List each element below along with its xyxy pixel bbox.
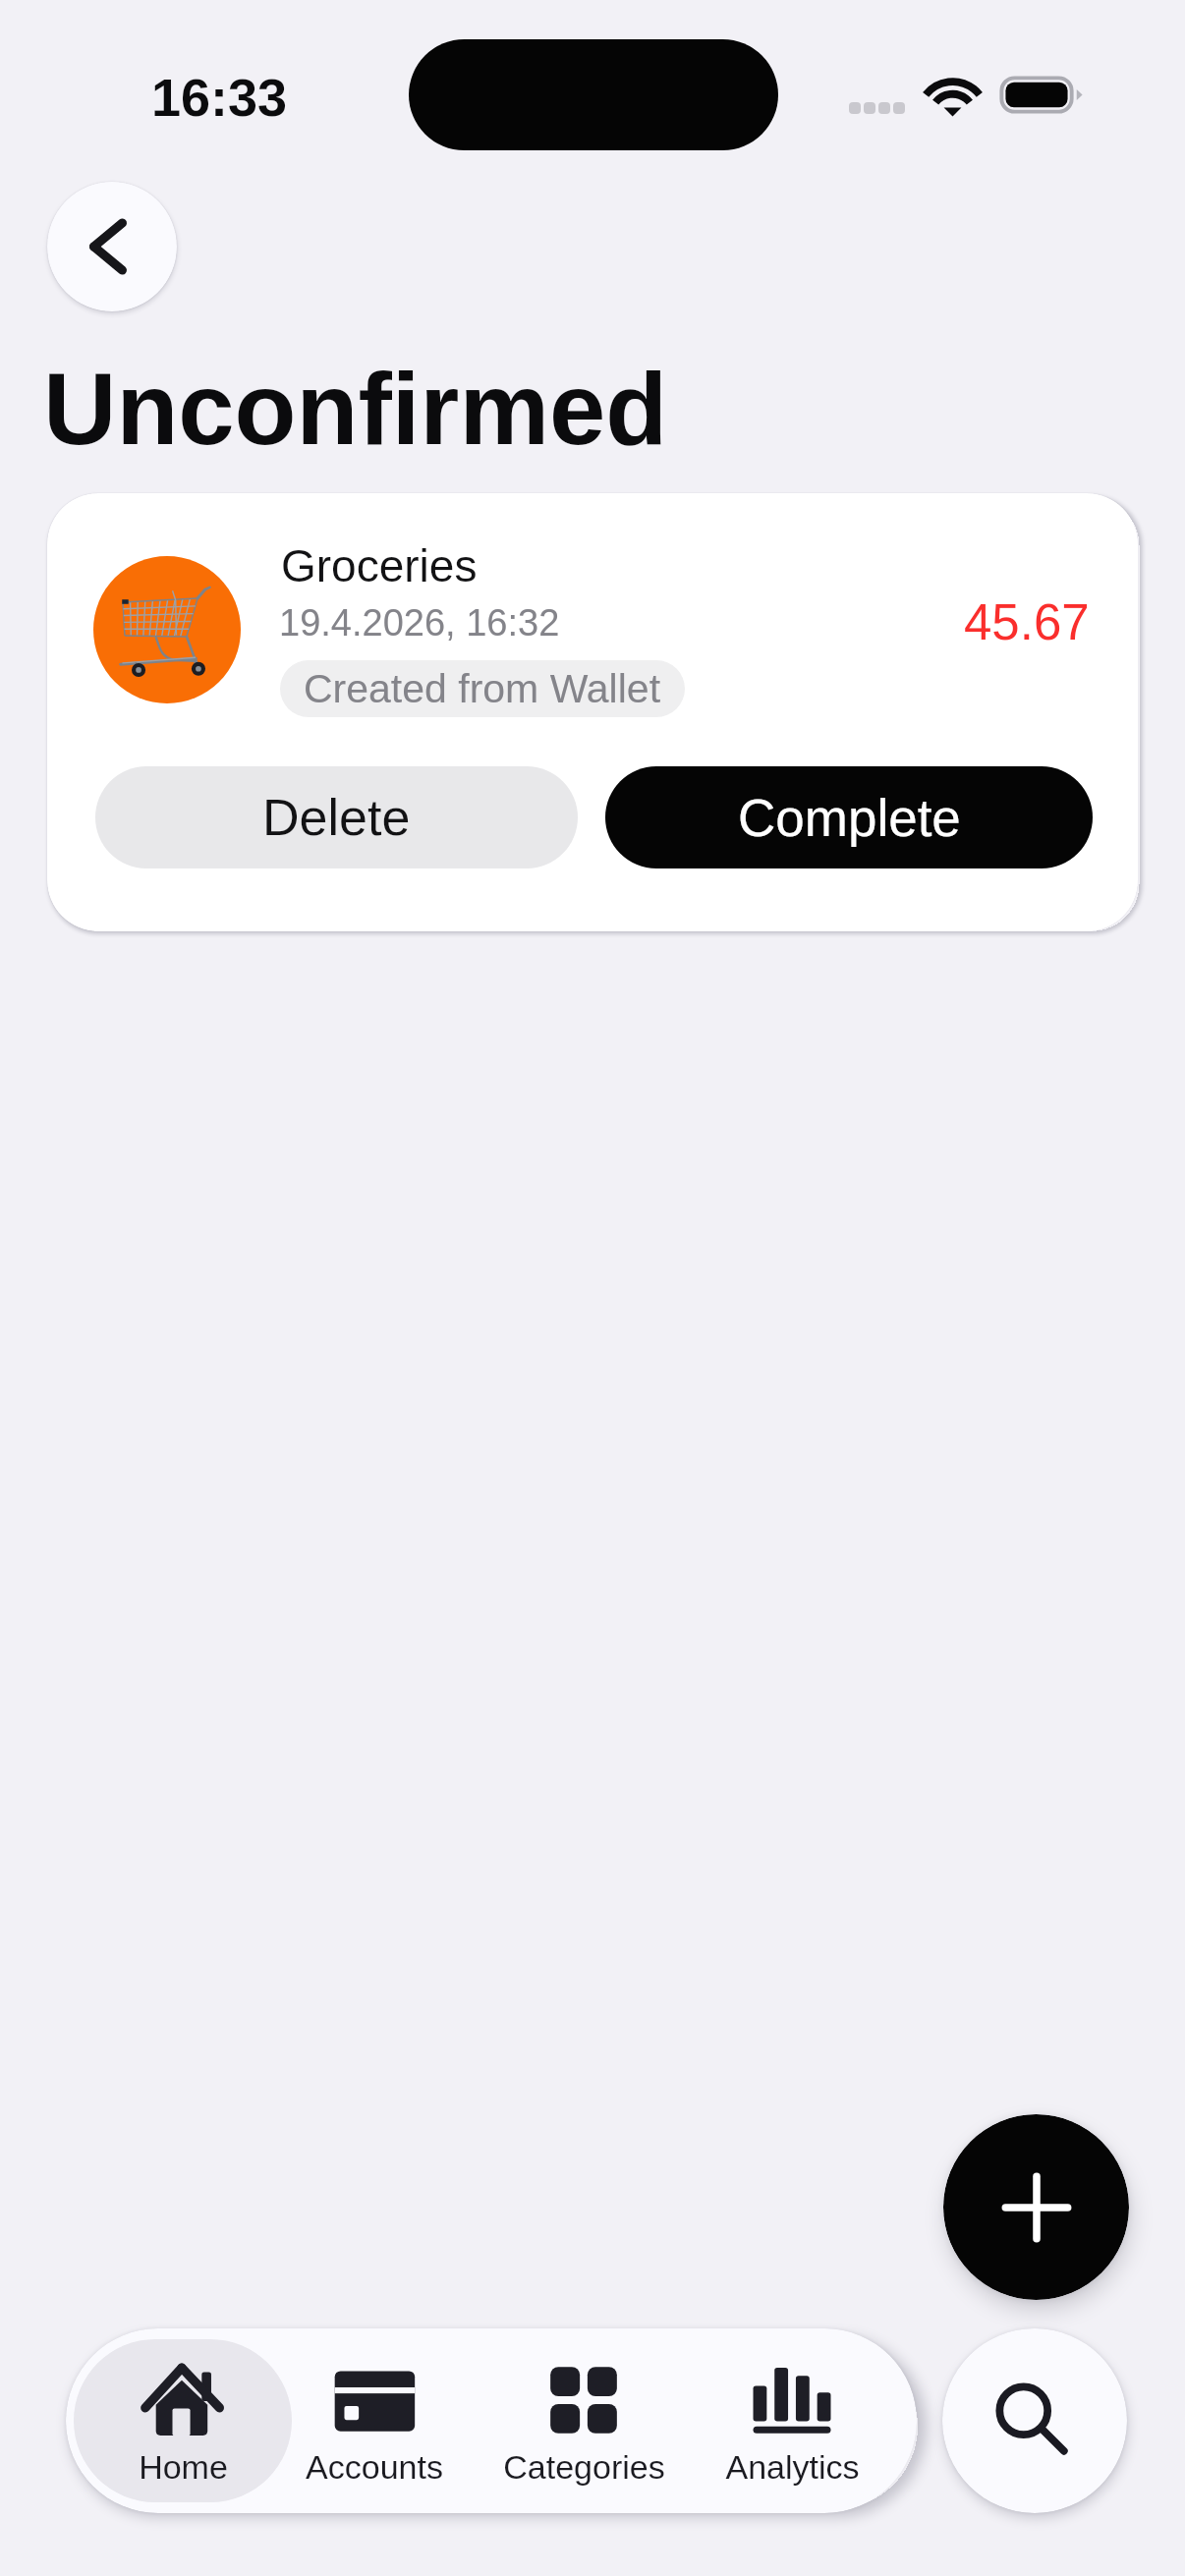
staticText: 19.4.2026, 16:32 bbox=[279, 602, 560, 644]
staticText: Accounts bbox=[306, 2448, 443, 2486]
button[interactable]: Delete bbox=[95, 766, 578, 868]
staticText: Home bbox=[139, 2448, 228, 2486]
button[interactable]: Accounts bbox=[265, 2339, 483, 2502]
button[interactable]: Groceries bbox=[47, 493, 1138, 931]
button[interactable]: Analytics bbox=[683, 2339, 901, 2502]
button[interactable]: Search bbox=[942, 2328, 1127, 2513]
staticText: 16:33 bbox=[151, 68, 288, 127]
button[interactable]: Back bbox=[47, 182, 177, 311]
staticText: 45.67 bbox=[964, 594, 1090, 650]
staticText: Unconfirmed bbox=[43, 353, 668, 466]
button[interactable]: Add bbox=[943, 2114, 1129, 2300]
button[interactable]: Complete bbox=[605, 766, 1093, 868]
staticText: Analytics bbox=[725, 2448, 860, 2486]
button[interactable]: Categories bbox=[475, 2339, 693, 2502]
button[interactable]: Home bbox=[74, 2339, 292, 2502]
staticText: Categories bbox=[503, 2448, 665, 2486]
staticText: Groceries bbox=[281, 540, 478, 590]
staticText: Delete bbox=[262, 789, 411, 846]
staticText: Complete bbox=[738, 789, 961, 847]
staticText: Created from Wallet bbox=[304, 666, 661, 711]
